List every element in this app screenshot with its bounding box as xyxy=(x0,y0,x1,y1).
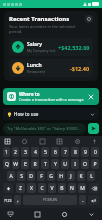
button[interactable]: I xyxy=(71,159,79,169)
staticText: E xyxy=(24,161,27,168)
button[interactable]: Hide keyboard xyxy=(6,210,15,219)
staticText: C xyxy=(40,185,44,192)
staticText: G xyxy=(49,173,53,180)
button[interactable]: Filter xyxy=(85,15,93,23)
staticText: How to use xyxy=(14,111,39,117)
staticText: N xyxy=(70,185,74,192)
button[interactable]: W xyxy=(12,159,19,169)
button[interactable]: M xyxy=(78,183,86,193)
button[interactable]: B xyxy=(58,183,66,193)
button[interactable]: , xyxy=(14,195,21,205)
staticText: H xyxy=(59,173,63,180)
button[interactable]: Recents xyxy=(33,210,42,219)
button[interactable]: Dismiss xyxy=(87,93,95,101)
button[interactable]: Z xyxy=(16,183,25,193)
button[interactable]: 7 xyxy=(61,147,69,157)
button[interactable]: U xyxy=(61,159,69,169)
button[interactable]: A xyxy=(7,171,15,181)
button[interactable]: V xyxy=(48,183,56,193)
staticText: Create a transaction with a message xyxy=(19,97,84,102)
staticText: J xyxy=(70,173,72,180)
staticText: 5 xyxy=(44,149,47,156)
button[interactable]: H xyxy=(57,171,65,181)
button[interactable]: Send xyxy=(88,123,99,134)
staticText: 4 xyxy=(34,149,37,156)
button[interactable]: Keyboard tool 2 xyxy=(39,138,46,145)
button[interactable]: 4 xyxy=(31,147,39,157)
button[interactable]: Salary xyxy=(12,41,90,53)
staticText: I xyxy=(74,161,76,168)
staticText: Restaurant xyxy=(27,69,45,74)
staticText: 7 xyxy=(64,149,67,156)
button[interactable]: O xyxy=(81,159,89,169)
staticText: 9 xyxy=(84,149,87,156)
button[interactable]: backspace xyxy=(89,183,99,193)
button[interactable]: Y xyxy=(51,159,59,169)
button[interactable]: Back xyxy=(87,210,96,219)
staticText: Salary xyxy=(27,41,42,48)
button[interactable]: Lunch xyxy=(12,62,90,74)
staticText: S xyxy=(20,173,23,180)
staticText: -$12.40 xyxy=(70,65,90,72)
staticText: O xyxy=(83,161,87,168)
button[interactable]: K xyxy=(77,171,85,181)
button[interactable]: X xyxy=(27,183,36,193)
button[interactable]: 3 xyxy=(21,147,29,157)
staticText: B xyxy=(60,185,64,192)
button[interactable]: 1 xyxy=(3,147,10,157)
staticText: Recent Transactions xyxy=(9,15,70,23)
button[interactable]: Q xyxy=(3,159,10,169)
button[interactable]: Keyboard tool 3 xyxy=(56,138,63,145)
button[interactable]: ?123 xyxy=(3,195,12,205)
button[interactable]: 8 xyxy=(71,147,79,157)
staticText: 3 xyxy=(24,149,27,156)
button[interactable]: 0 xyxy=(91,147,99,157)
button[interactable]: 2 xyxy=(12,147,19,157)
button[interactable]: R xyxy=(31,159,39,169)
button[interactable]: 5 xyxy=(41,147,49,157)
staticText: , xyxy=(17,197,19,204)
staticText: . xyxy=(82,197,84,204)
staticText: M xyxy=(80,185,85,192)
staticText: +$42,532.00 xyxy=(58,44,90,51)
button[interactable]: E xyxy=(21,159,29,169)
button[interactable]: T xyxy=(41,159,49,169)
button[interactable]: PT-BR-EN xyxy=(23,195,77,205)
button[interactable]: Keyboard tool 0 xyxy=(4,138,11,145)
button[interactable]: N xyxy=(68,183,76,193)
staticText: P xyxy=(93,161,97,168)
staticText: L xyxy=(90,173,93,180)
staticText: Where to xyxy=(19,91,40,97)
staticText: A xyxy=(9,173,13,180)
button[interactable]: 9 xyxy=(81,147,89,157)
button[interactable]: Try "McDonalds $50" or "Salary $5000"... xyxy=(7,123,82,134)
button[interactable]: F xyxy=(37,171,45,181)
button[interactable]: Keyboard tool 5 xyxy=(91,138,98,145)
staticText: Lunch xyxy=(27,62,42,69)
staticText: U xyxy=(63,161,67,168)
button[interactable]: L xyxy=(87,171,95,181)
button[interactable]: Where to xyxy=(7,91,95,102)
button[interactable]: G xyxy=(47,171,55,181)
button[interactable]: How to use xyxy=(7,111,95,117)
staticText: Z xyxy=(19,185,22,192)
button[interactable]: shift xyxy=(3,183,13,193)
button[interactable]: S xyxy=(17,171,25,181)
staticText: K xyxy=(79,173,83,180)
staticText: W xyxy=(13,161,18,168)
staticText: 1 xyxy=(5,149,8,156)
button[interactable]: 6 xyxy=(51,147,59,157)
button[interactable]: P xyxy=(91,159,99,169)
staticText: X xyxy=(30,185,33,192)
button[interactable]: . xyxy=(79,195,86,205)
button[interactable]: Home xyxy=(60,210,69,219)
staticText: 0 xyxy=(94,149,97,156)
button[interactable]: D xyxy=(27,171,35,181)
button[interactable]: Keyboard tool 4 xyxy=(74,138,81,145)
button[interactable]: C xyxy=(38,183,46,193)
button[interactable]: Keyboard tool 1 xyxy=(21,138,28,145)
button[interactable]: J xyxy=(67,171,75,181)
staticText: PT-BR-EN xyxy=(43,198,57,202)
staticText: Try "McDonalds $50" or "Salary $5000"... xyxy=(7,126,82,131)
button[interactable]: Enter xyxy=(88,195,99,205)
